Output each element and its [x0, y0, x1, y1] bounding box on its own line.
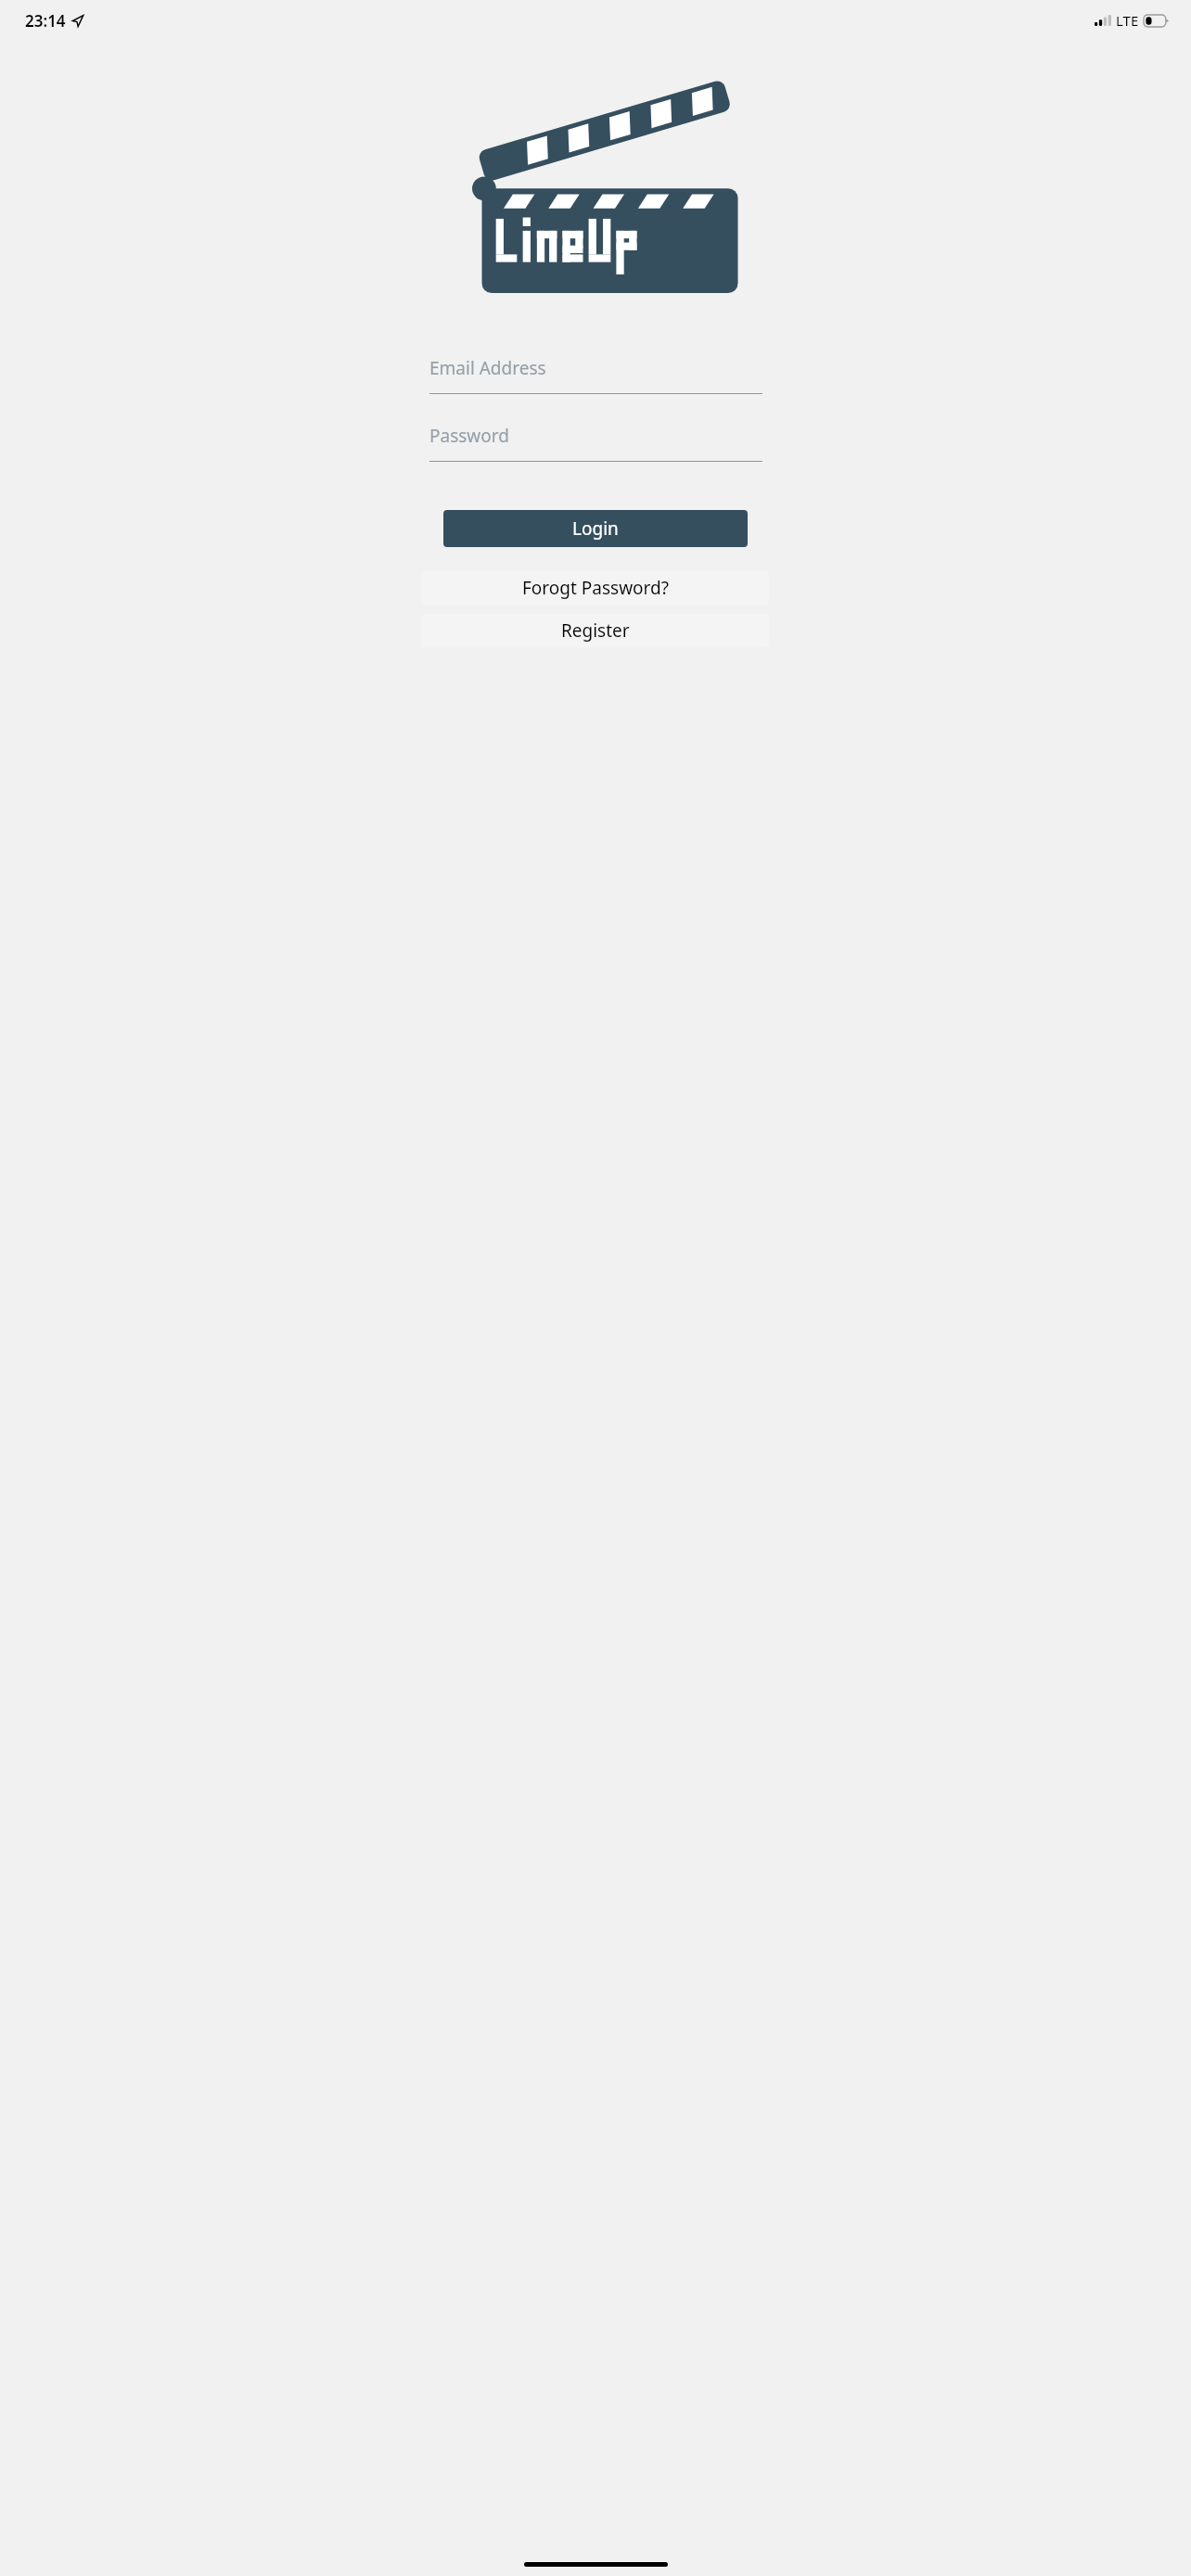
- staticText: Forogt Password?: [522, 576, 669, 600]
- staticText: Email Address: [429, 356, 546, 380]
- staticText: 23:14: [25, 10, 66, 32]
- button[interactable]: Password: [429, 416, 762, 462]
- staticText: Password: [429, 424, 509, 448]
- button[interactable]: Register: [422, 614, 769, 647]
- other: LineUp logo: [461, 145, 739, 293]
- button[interactable]: Forogt Password?: [422, 571, 769, 605]
- button[interactable]: Email Address: [429, 349, 762, 394]
- staticText: Login: [572, 516, 619, 541]
- button[interactable]: Login: [443, 510, 748, 547]
- staticText: Register: [561, 618, 630, 643]
- staticText: LTE: [1116, 11, 1139, 30]
